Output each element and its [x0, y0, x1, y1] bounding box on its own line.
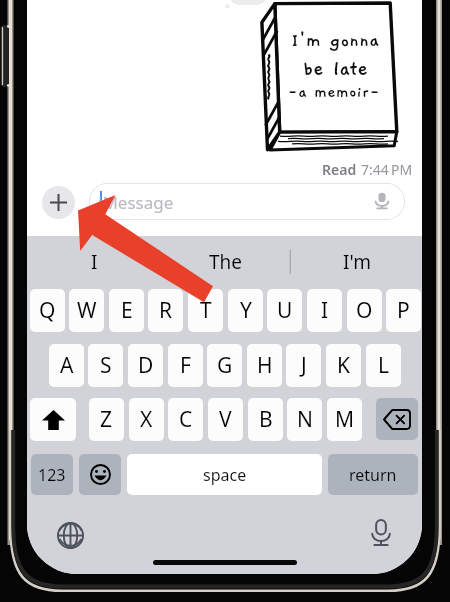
- staticText: N: [297, 405, 313, 434]
- staticText: S: [100, 351, 112, 380]
- button[interactable]: D: [128, 344, 163, 387]
- button[interactable]: iMessage: [89, 183, 405, 220]
- button[interactable]: The: [160, 238, 291, 286]
- button[interactable]: Change keyboard: [55, 520, 85, 550]
- staticText: F: [180, 351, 191, 380]
- staticText: The: [209, 249, 243, 275]
- staticText: be late: [303, 58, 368, 80]
- staticText: W: [77, 296, 97, 325]
- staticText: R: [159, 296, 173, 325]
- button[interactable]: A: [49, 344, 84, 387]
- staticText: Q: [39, 296, 56, 325]
- button[interactable]: U: [267, 289, 302, 332]
- button[interactable]: S: [88, 344, 123, 387]
- button[interactable]: F: [168, 344, 203, 387]
- staticText: I'm gonna: [291, 30, 380, 51]
- button[interactable]: X: [129, 398, 164, 441]
- staticText: H: [257, 351, 273, 380]
- staticText: J: [301, 351, 307, 380]
- button[interactable]: I'm: [291, 238, 422, 286]
- button[interactable]: R: [148, 289, 183, 332]
- button[interactable]: Z: [89, 398, 124, 441]
- button[interactable]: O: [347, 289, 382, 332]
- button[interactable]: space: [127, 454, 322, 495]
- button[interactable]: Dictation: [366, 518, 396, 548]
- staticText: I: [91, 249, 98, 275]
- staticText: 7:44: [361, 160, 389, 179]
- staticText: return: [349, 464, 397, 486]
- button[interactable]: Dictate message: [373, 192, 391, 210]
- staticText: U: [277, 296, 293, 325]
- button[interactable]: V: [208, 398, 243, 441]
- staticText: G: [217, 351, 233, 380]
- staticText: D: [138, 351, 154, 380]
- button[interactable]: T: [188, 289, 223, 332]
- staticText: Y: [240, 296, 252, 325]
- staticText: B: [259, 405, 273, 434]
- button[interactable]: J: [286, 344, 321, 387]
- staticText: I'm: [343, 249, 371, 275]
- button[interactable]: Add attachment: [42, 186, 75, 219]
- staticText: 123: [38, 464, 66, 486]
- button[interactable]: E: [109, 289, 144, 332]
- staticText: M: [335, 405, 355, 434]
- staticText: V: [219, 405, 232, 434]
- staticText: space: [203, 464, 247, 486]
- staticText: Z: [100, 405, 113, 434]
- staticText: L: [378, 351, 390, 380]
- staticText: I: [321, 296, 329, 325]
- button[interactable]: 123: [31, 454, 73, 495]
- button[interactable]: return: [328, 454, 418, 495]
- button[interactable]: Q: [30, 289, 65, 332]
- button[interactable]: C: [168, 398, 203, 441]
- staticText: iMessage: [98, 191, 174, 214]
- button[interactable]: H: [247, 344, 282, 387]
- staticText: -a memoir-: [287, 83, 381, 101]
- staticText: T: [200, 296, 212, 325]
- button[interactable]: G: [207, 344, 242, 387]
- staticText: O: [356, 296, 373, 325]
- staticText: C: [179, 405, 193, 434]
- button[interactable]: Backspace: [376, 398, 418, 440]
- button[interactable]: B: [248, 398, 283, 441]
- button[interactable]: N: [287, 398, 322, 441]
- button[interactable]: Shift: [30, 398, 76, 441]
- staticText: X: [140, 405, 153, 434]
- button[interactable]: W: [69, 289, 104, 332]
- staticText: Read: [322, 160, 357, 179]
- staticText: PM: [391, 160, 413, 179]
- staticText: P: [397, 296, 410, 325]
- button[interactable]: L: [366, 344, 401, 387]
- staticText: A: [60, 351, 74, 380]
- staticText: K: [337, 351, 350, 380]
- staticText: E: [121, 296, 133, 325]
- button[interactable]: P: [386, 289, 421, 332]
- button[interactable]: Y: [228, 289, 263, 332]
- button[interactable]: I: [29, 238, 160, 286]
- button[interactable]: Emoji keyboard: [79, 454, 121, 495]
- button[interactable]: I: [307, 289, 342, 332]
- button[interactable]: K: [326, 344, 361, 387]
- button[interactable]: M: [327, 398, 362, 441]
